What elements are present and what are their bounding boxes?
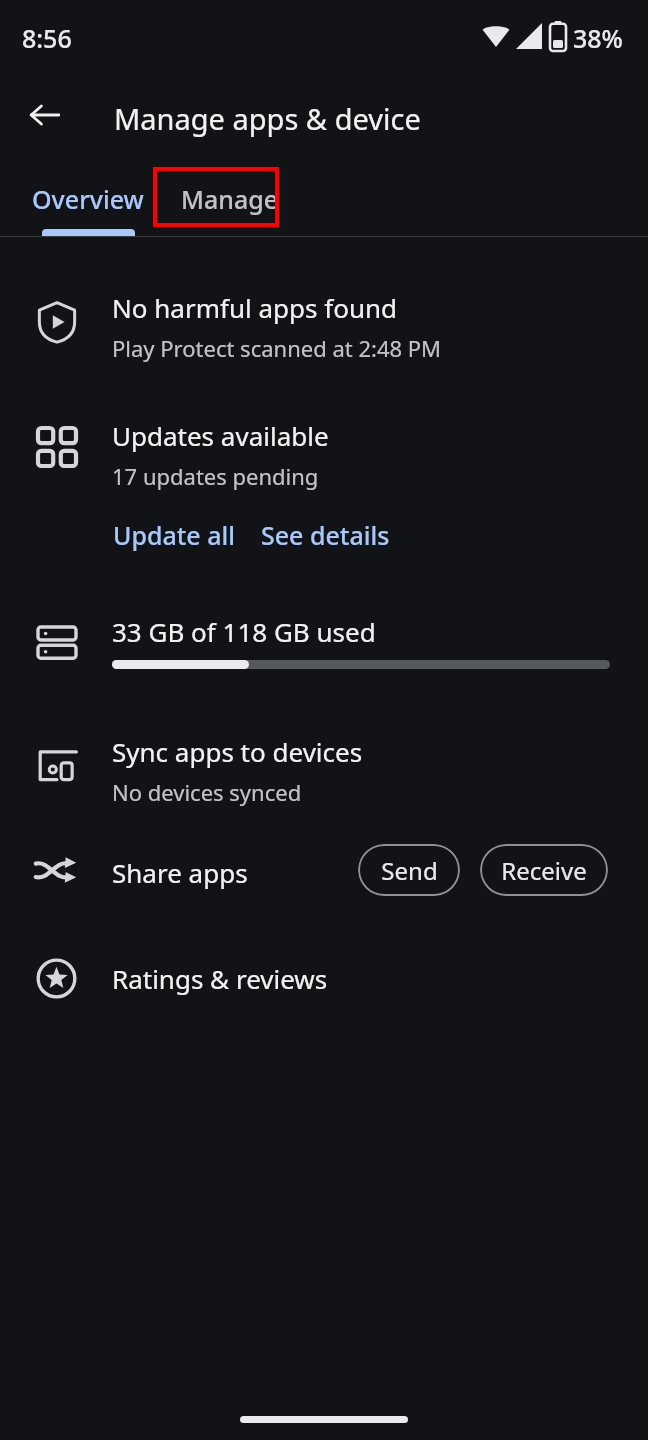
- staticText: Updates available: [112, 418, 329, 453]
- button[interactable]: No harmful apps found: [0, 268, 648, 378]
- button[interactable]: Sync apps to devices: [0, 712, 648, 820]
- staticText: No harmful apps found: [112, 290, 398, 325]
- button[interactable]: Send: [358, 844, 460, 896]
- staticText: Send: [381, 854, 438, 887]
- staticText: Update all: [113, 518, 235, 552]
- staticText: Sync apps to devices: [112, 734, 363, 769]
- button[interactable]: Manage: [164, 162, 296, 236]
- staticText: Share apps: [112, 855, 248, 890]
- button[interactable]: Update all: [100, 508, 238, 562]
- staticText: 33 GB of 118 GB used: [112, 614, 376, 649]
- button[interactable]: Updates available: [0, 396, 648, 506]
- staticText: Manage apps & device: [114, 99, 421, 138]
- staticText: Overview: [32, 182, 144, 216]
- staticText: Manage: [181, 182, 279, 216]
- button[interactable]: Overview: [12, 162, 164, 236]
- button[interactable]: Back: [16, 86, 74, 144]
- staticText: 38%: [573, 21, 623, 55]
- staticText: Play Protect scanned at 2:48 PM: [112, 333, 442, 363]
- button[interactable]: Ratings & reviews: [0, 938, 648, 1016]
- staticText: 17 updates pending: [112, 461, 319, 491]
- staticText: Ratings & reviews: [112, 961, 328, 996]
- staticText: No devices synced: [112, 777, 302, 807]
- button[interactable]: See details: [248, 508, 402, 562]
- button[interactable]: Receive: [480, 844, 608, 896]
- staticText: 8:56: [22, 21, 72, 55]
- staticText: Receive: [501, 854, 587, 887]
- button[interactable]: 33 GB of 118 GB used: [0, 592, 648, 698]
- staticText: See details: [261, 518, 390, 552]
